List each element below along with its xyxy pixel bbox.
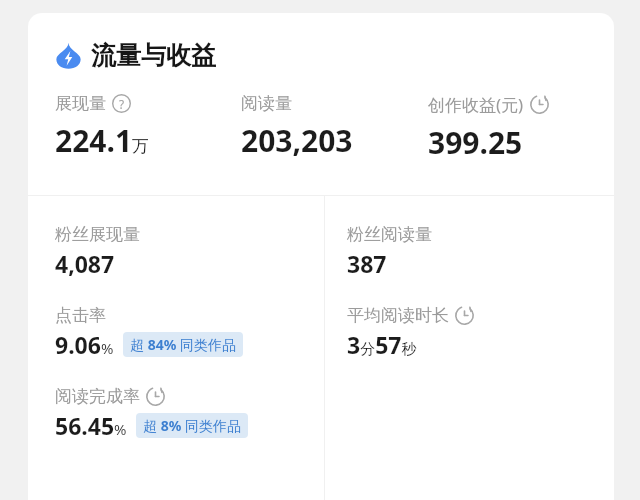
button[interactable]: 点击率 [55, 305, 324, 360]
button[interactable]: 粉丝阅读量 [347, 224, 614, 279]
button[interactable]: 超 8% 同类作品 [136, 413, 248, 438]
staticText: 流量与收益 [91, 40, 216, 71]
staticText: 超 84% 同类作品 [130, 335, 236, 354]
staticText: 203,203 [241, 120, 353, 161]
staticText: 399.25 [428, 122, 523, 163]
other: 流量图标 [55, 42, 82, 69]
staticText: 56.45% [55, 410, 127, 441]
staticText: 4,087 [55, 248, 115, 279]
staticText: 9.06% [55, 329, 114, 360]
staticText: 粉丝展现量 [55, 224, 140, 245]
button[interactable]: 阅读完成率 [55, 386, 324, 441]
staticText: 超 8% 同类作品 [143, 416, 241, 435]
staticText: ? [119, 96, 125, 112]
button[interactable]: 粉丝展现量 [55, 224, 324, 279]
staticText: 平均阅读时长 [347, 305, 449, 326]
staticText: 点击率 [55, 305, 106, 326]
staticText: 展现量 [55, 93, 106, 114]
button[interactable]: 流量图标 [28, 13, 614, 77]
button[interactable]: 超 84% 同类作品 [123, 332, 243, 357]
staticText: 阅读量 [241, 93, 292, 114]
staticText: 3分57秒 [347, 329, 417, 360]
staticText: 387 [347, 248, 387, 279]
button[interactable]: 阅读量 [241, 93, 428, 161]
staticText: 粉丝阅读量 [347, 224, 432, 245]
staticText: 224.1万 [55, 120, 150, 161]
button[interactable]: 展现量 [55, 93, 241, 161]
staticText: 阅读完成率 [55, 386, 140, 407]
staticText: 创作收益(元) [428, 93, 524, 116]
button[interactable]: 平均阅读时长 [347, 305, 614, 360]
button[interactable]: 创作收益(元) [428, 93, 604, 163]
